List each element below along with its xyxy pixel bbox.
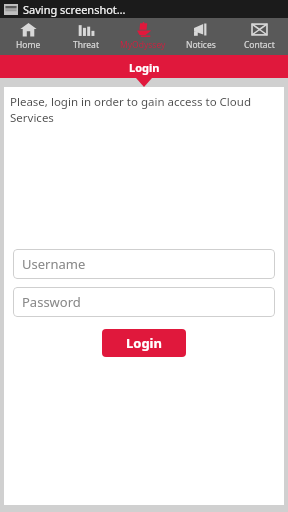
staticText: Login bbox=[126, 334, 162, 352]
button[interactable]: Notices bbox=[172, 18, 230, 55]
staticText: Home bbox=[16, 39, 41, 51]
button[interactable]: MyOdyssey bbox=[114, 18, 172, 55]
staticText: Password bbox=[22, 293, 81, 311]
staticText: Login bbox=[129, 60, 160, 75]
button[interactable]: Password bbox=[13, 287, 275, 317]
button[interactable]: Login bbox=[102, 329, 186, 357]
staticText: Threat bbox=[73, 39, 99, 51]
staticText: Username bbox=[22, 255, 86, 273]
staticText: MyOdyssey bbox=[120, 39, 166, 51]
button[interactable]: Contact bbox=[230, 18, 288, 55]
button[interactable]: Threat bbox=[57, 18, 114, 55]
staticText: Notices bbox=[186, 39, 216, 51]
button[interactable]: Home bbox=[0, 18, 57, 55]
staticText: Contact bbox=[244, 39, 275, 51]
button[interactable]: Username bbox=[13, 249, 275, 279]
staticText: Saving screenshot… bbox=[23, 2, 126, 17]
staticText: Please, login in order to gain access to… bbox=[10, 94, 278, 126]
